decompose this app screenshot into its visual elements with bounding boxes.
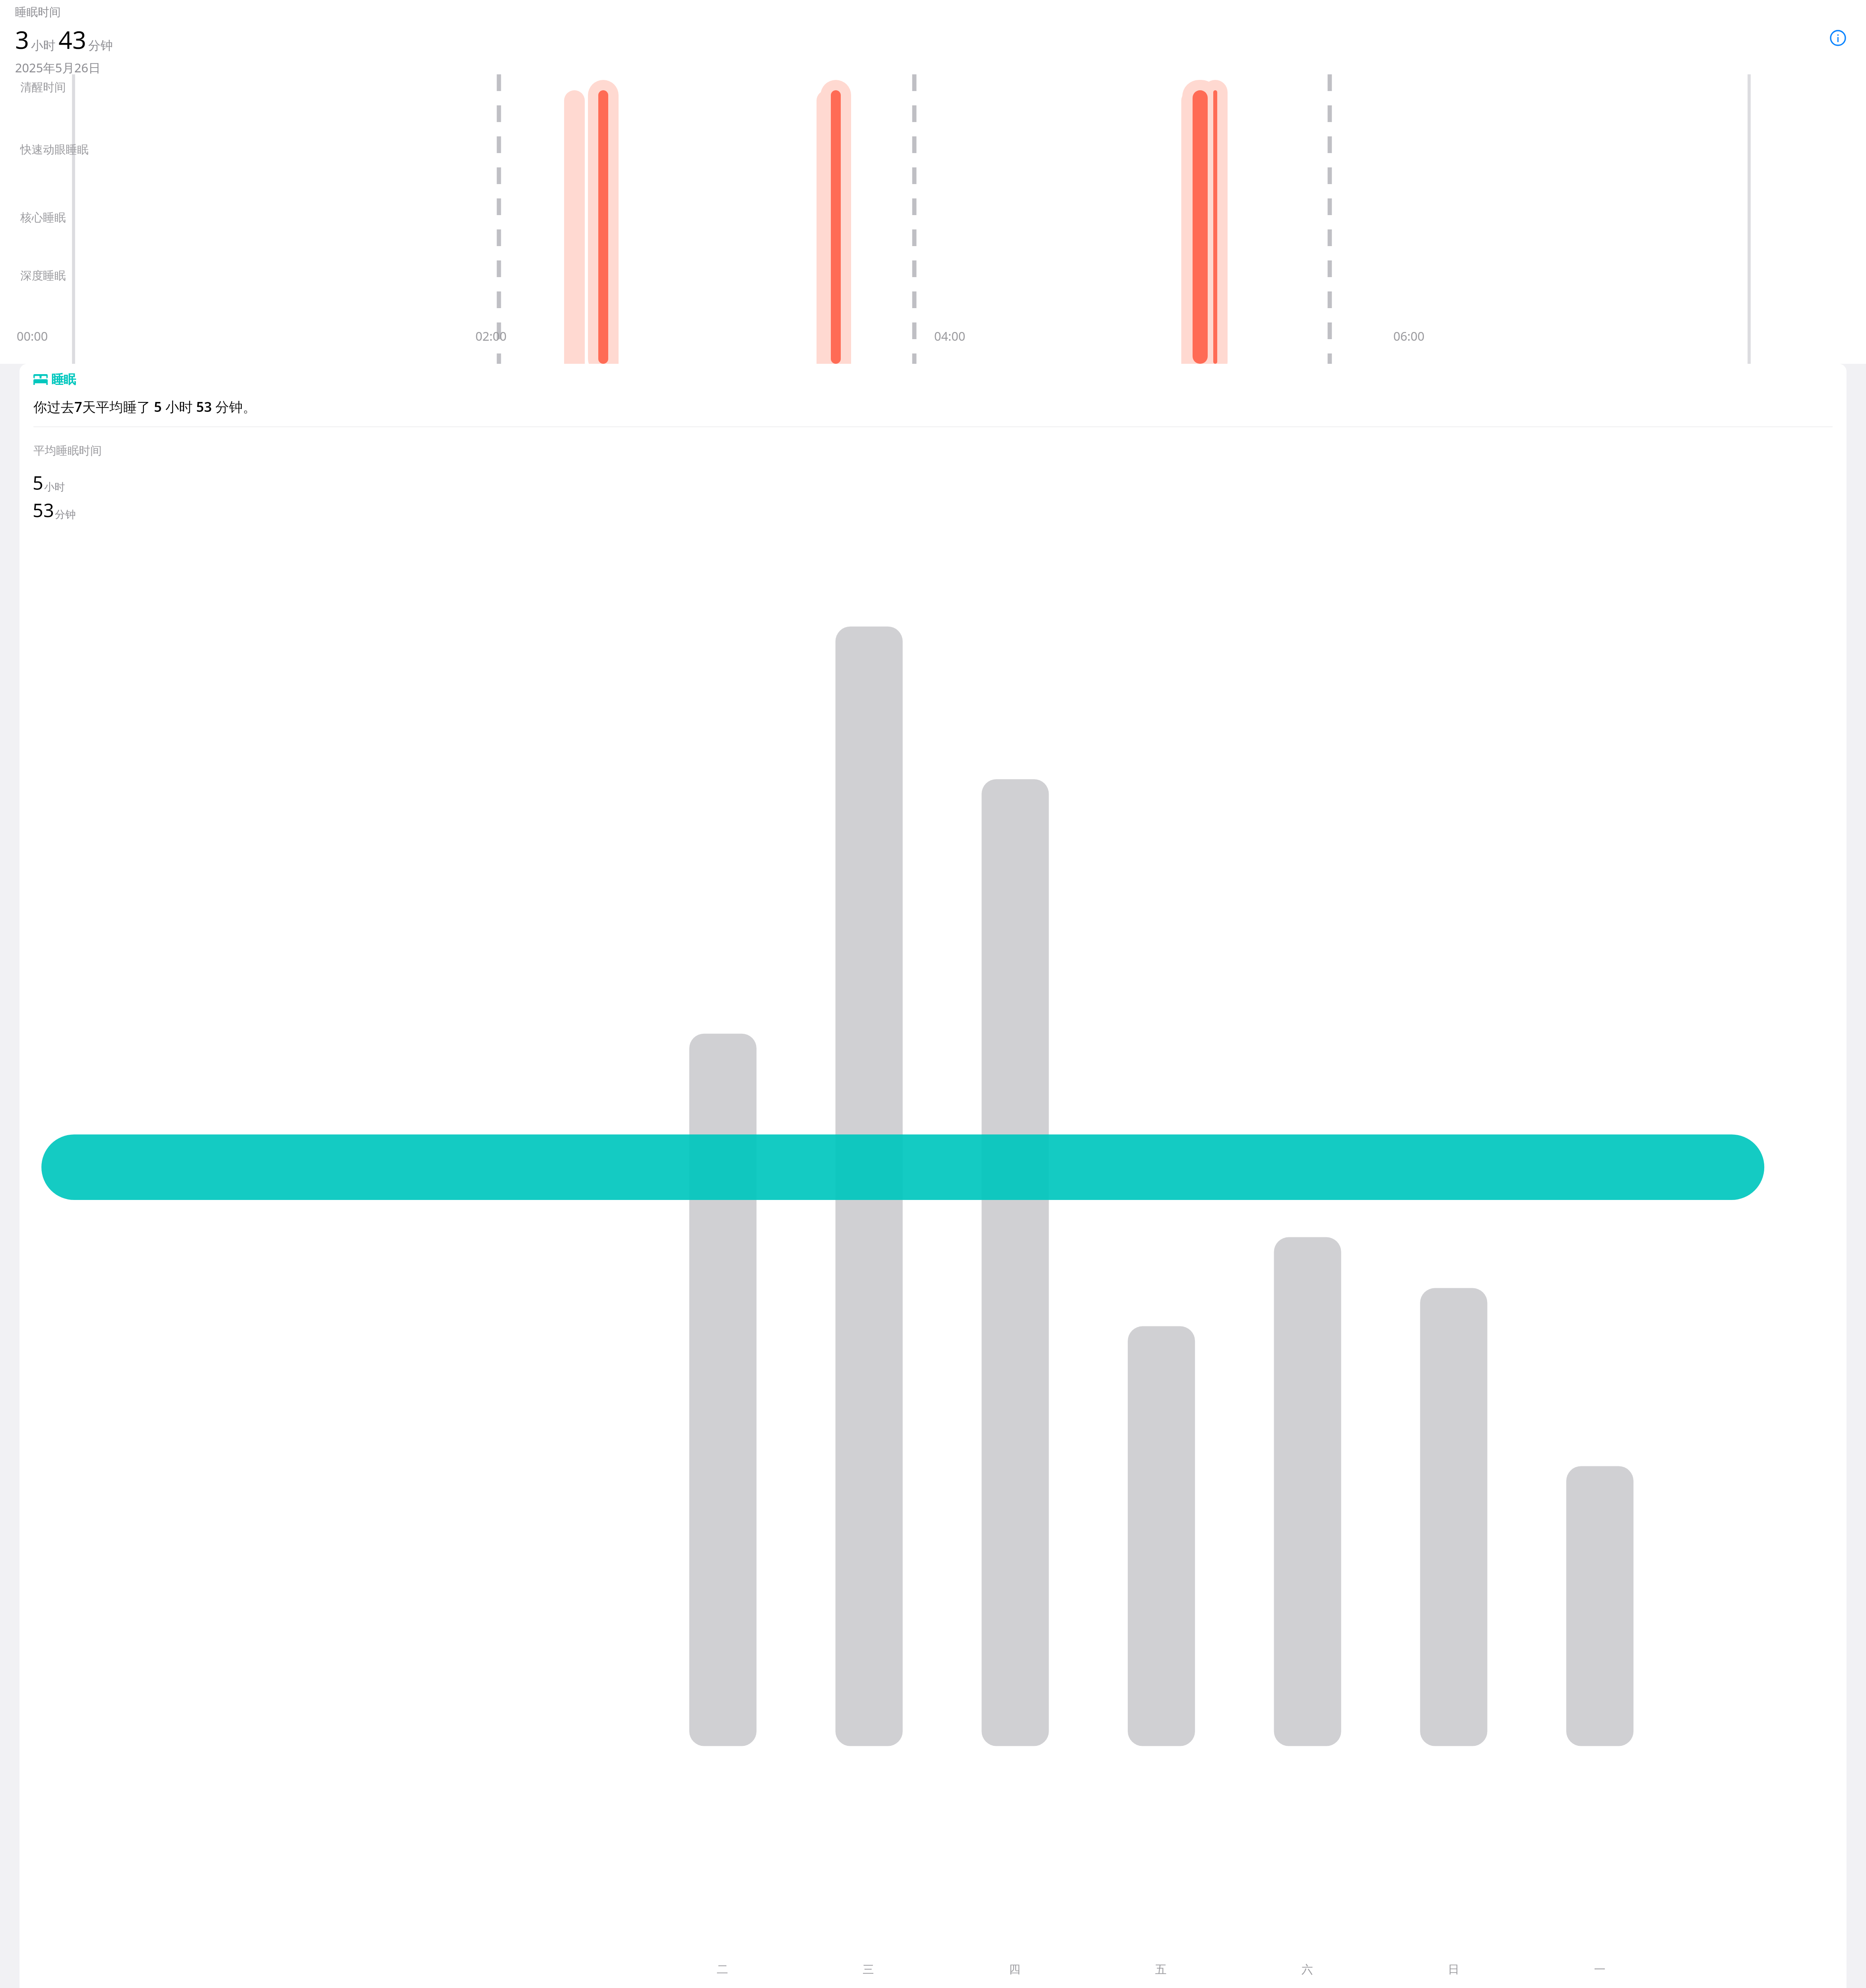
- staticText: 分钟: [55, 508, 76, 521]
- staticText: 五: [1155, 1962, 1167, 1976]
- staticText: 快速动眼睡眠: [20, 142, 89, 157]
- staticText: 六: [1302, 1962, 1313, 1976]
- staticText: 核心睡眠: [20, 210, 66, 225]
- button[interactable]: 信息: [1829, 29, 1847, 47]
- staticText: 一: [1594, 1962, 1606, 1976]
- staticText: 3: [15, 23, 29, 56]
- staticText: 深度睡眠: [20, 268, 66, 283]
- staticText: 四: [1009, 1962, 1020, 1976]
- staticText: 5: [33, 470, 43, 495]
- staticText: 清醒时间: [20, 80, 66, 94]
- staticText: 平均睡眠时间: [33, 443, 102, 458]
- staticText: 00:00: [17, 328, 48, 344]
- staticText: 日: [1448, 1962, 1459, 1976]
- staticText: 分钟: [88, 38, 113, 53]
- staticText: 43: [58, 23, 87, 56]
- button[interactable]: 睡眠: [19, 364, 1847, 1988]
- staticText: 睡眠时间: [15, 5, 61, 19]
- staticText: 04:00: [934, 328, 966, 344]
- staticText: 三: [863, 1962, 874, 1976]
- staticText: 小时: [31, 38, 56, 53]
- staticText: 06:00: [1393, 328, 1425, 344]
- staticText: 2025年5月26日: [15, 59, 101, 74]
- staticText: 你过去7天平均睡了 5 小时 53 分钟。: [33, 397, 256, 416]
- staticText: 二: [717, 1962, 728, 1976]
- staticText: 睡眠: [51, 372, 76, 387]
- staticText: 02:00: [475, 328, 507, 344]
- staticText: 53: [33, 497, 54, 523]
- staticText: 小时: [44, 481, 65, 494]
